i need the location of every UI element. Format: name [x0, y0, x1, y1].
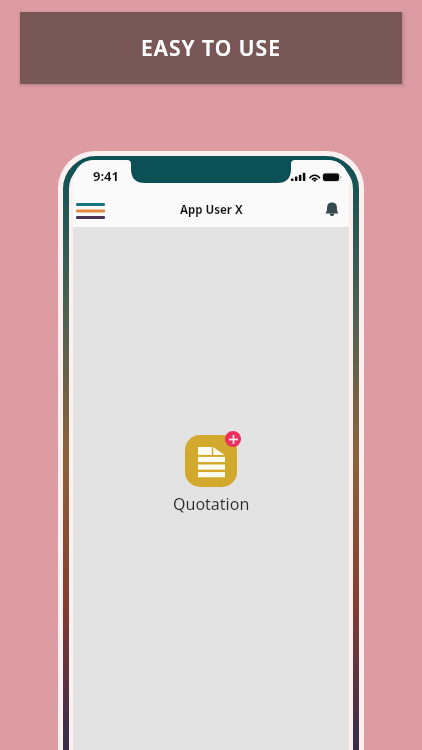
button[interactable]: Notifications	[316, 193, 348, 225]
staticText: App User X	[180, 202, 243, 218]
button[interactable]: Quotation	[180, 431, 244, 487]
staticText: 9:41	[93, 167, 119, 185]
button[interactable]: EASY TO USE	[20, 12, 402, 84]
staticText: Quotation	[173, 493, 250, 515]
staticText: EASY TO USE	[141, 34, 282, 63]
button[interactable]: Menu	[73, 192, 110, 230]
